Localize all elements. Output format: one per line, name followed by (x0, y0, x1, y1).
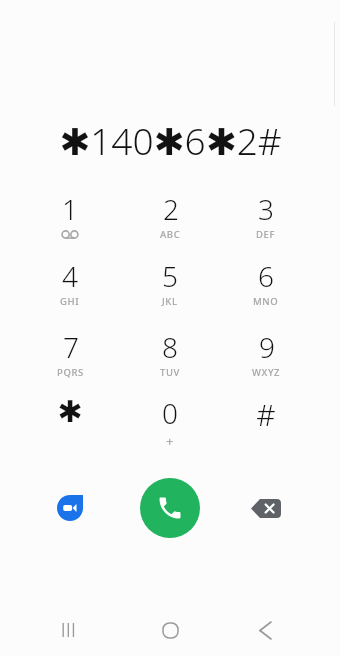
button[interactable]: 6 (226, 257, 306, 319)
staticText: ABC (160, 228, 181, 241)
button[interactable]: ✱ (30, 394, 110, 456)
staticText: PQRS (57, 366, 84, 379)
staticText: MNO (253, 295, 279, 308)
button[interactable]: 2 (130, 190, 210, 252)
staticText: GHI (60, 295, 80, 308)
button[interactable]: 3 (226, 190, 306, 252)
button[interactable]: 4 (30, 257, 110, 319)
button[interactable]: 9 (226, 328, 306, 390)
staticText: ✱ (57, 394, 83, 429)
button[interactable]: Backspace (242, 486, 290, 530)
staticText: TUV (160, 366, 180, 379)
staticText: 8 (162, 328, 178, 366)
button[interactable]: Home (146, 606, 194, 654)
button[interactable]: Video call (46, 484, 94, 532)
staticText: DEF (256, 228, 276, 241)
staticText: + (166, 432, 174, 450)
staticText: # (256, 394, 276, 435)
staticText: 2 (163, 190, 179, 228)
staticText: 3 (258, 190, 274, 228)
staticText: 5 (162, 257, 178, 295)
button[interactable]: # (226, 394, 306, 456)
staticText: 4 (62, 257, 78, 295)
staticText: JKL (162, 295, 178, 308)
button[interactable]: 1 (30, 190, 110, 252)
button[interactable]: 0 (130, 394, 210, 456)
staticText: ✱140✱6✱2# (59, 115, 282, 165)
button[interactable]: Back (241, 606, 289, 654)
button[interactable]: Recents (44, 606, 92, 654)
button[interactable]: 8 (130, 328, 210, 390)
staticText: 6 (258, 257, 274, 295)
button[interactable]: 5 (130, 257, 210, 319)
staticText: WXYZ (252, 366, 281, 379)
staticText: 0 (162, 394, 178, 432)
button[interactable]: 7 (30, 328, 110, 390)
staticText: 1 (62, 190, 78, 228)
staticText: 7 (63, 328, 79, 366)
button[interactable]: Call (140, 478, 200, 538)
staticText: 9 (259, 328, 275, 366)
